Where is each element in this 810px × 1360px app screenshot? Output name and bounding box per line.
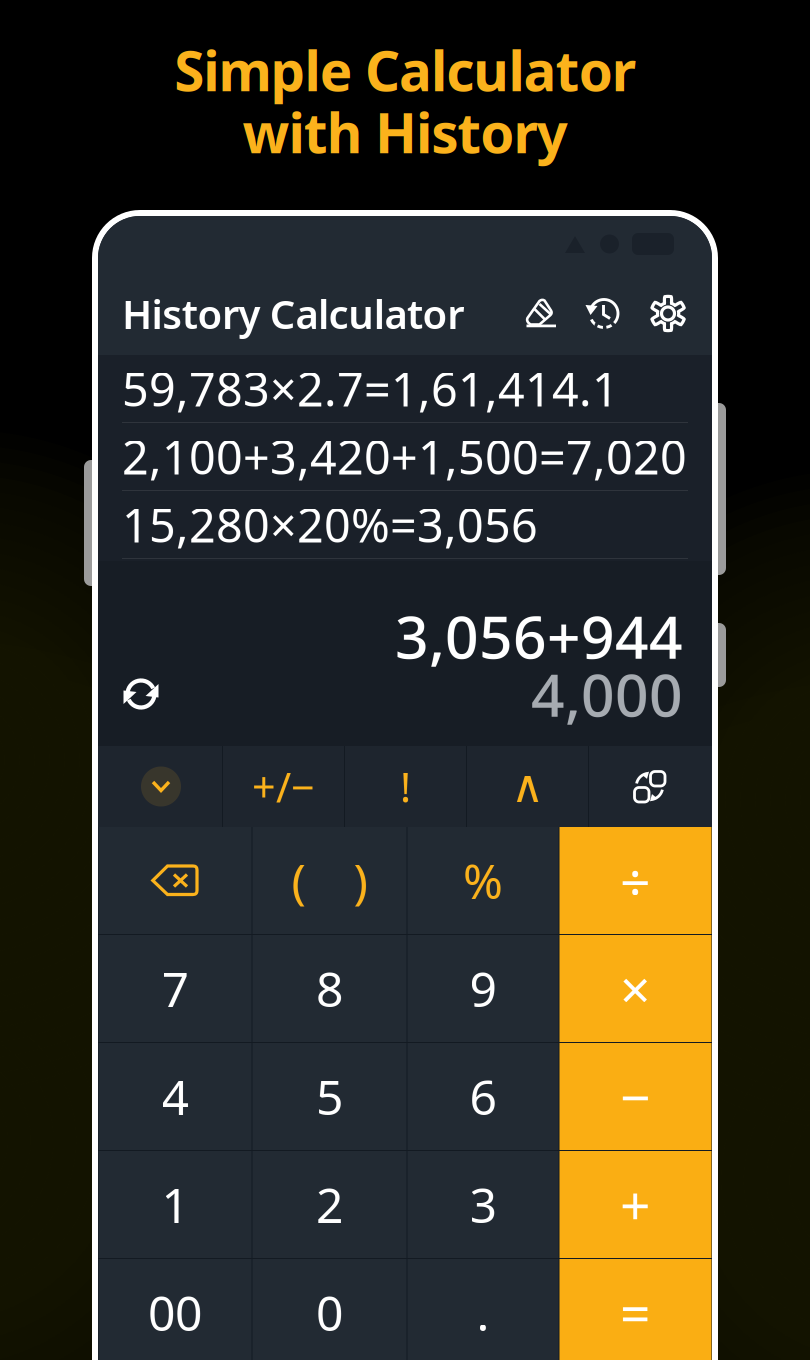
- button[interactable]: 9: [407, 935, 558, 1042]
- button[interactable]: ×: [559, 935, 711, 1042]
- staticText: Simple Calculator: [174, 34, 636, 106]
- button[interactable]: ( ): [252, 827, 406, 934]
- staticText: ∧: [511, 761, 544, 812]
- staticText: 4: [161, 1065, 188, 1128]
- button[interactable]: 0: [252, 1259, 406, 1360]
- staticText: 7: [161, 957, 188, 1020]
- button[interactable]: 6: [407, 1043, 558, 1150]
- button[interactable]: 4: [98, 1043, 251, 1150]
- staticText: 15,280×20%=3,056: [122, 493, 538, 555]
- button[interactable]: %: [407, 827, 558, 934]
- staticText: 2: [316, 1173, 343, 1236]
- button[interactable]: 8: [252, 935, 406, 1042]
- button[interactable]: Settings: [636, 282, 700, 344]
- button[interactable]: Scientific keypad: [589, 746, 710, 827]
- staticText: 59,783×2.7=1,61,414.1: [122, 357, 619, 419]
- staticText: 4,000: [531, 655, 683, 733]
- staticText: ×: [620, 953, 651, 1024]
- staticText: 1: [161, 1173, 188, 1236]
- button[interactable]: 1: [98, 1151, 251, 1258]
- button[interactable]: 5: [252, 1043, 406, 1150]
- staticText: +/−: [252, 759, 315, 814]
- staticText: 9: [469, 957, 496, 1020]
- staticText: 0: [316, 1281, 343, 1344]
- staticText: !: [400, 759, 411, 814]
- staticText: ÷: [620, 845, 651, 916]
- button[interactable]: +: [559, 1151, 711, 1258]
- staticText: %: [463, 849, 503, 912]
- button[interactable]: −: [559, 1043, 711, 1150]
- staticText: .: [476, 1281, 489, 1344]
- staticText: 5: [316, 1065, 343, 1128]
- button[interactable]: Clear history: [508, 282, 572, 344]
- button[interactable]: 00: [98, 1259, 251, 1360]
- button[interactable]: ÷: [559, 827, 711, 934]
- staticText: with History: [242, 96, 568, 168]
- button[interactable]: =: [559, 1259, 711, 1360]
- button[interactable]: 7: [98, 935, 251, 1042]
- staticText: History Calculator: [122, 287, 464, 340]
- staticText: ( ): [291, 849, 367, 912]
- button[interactable]: Recalculate: [116, 669, 166, 719]
- button[interactable]: History: [572, 282, 636, 344]
- staticText: 6: [469, 1065, 496, 1128]
- staticText: +: [620, 1169, 651, 1240]
- button[interactable]: ∧: [467, 746, 588, 827]
- button[interactable]: Backspace: [98, 827, 251, 934]
- button[interactable]: Collapse: [100, 746, 222, 827]
- button[interactable]: +/−: [223, 746, 344, 827]
- button[interactable]: .: [407, 1259, 558, 1360]
- button[interactable]: !: [345, 746, 466, 827]
- button[interactable]: 3: [407, 1151, 558, 1258]
- staticText: 3: [469, 1173, 496, 1236]
- staticText: 3,056+944: [395, 597, 683, 675]
- staticText: 8: [316, 957, 343, 1020]
- staticText: =: [620, 1277, 651, 1348]
- staticText: 00: [148, 1281, 202, 1344]
- staticText: 2,100+3,420+1,500=7,020: [122, 425, 687, 487]
- button[interactable]: 2: [252, 1151, 406, 1258]
- staticText: −: [620, 1061, 651, 1132]
